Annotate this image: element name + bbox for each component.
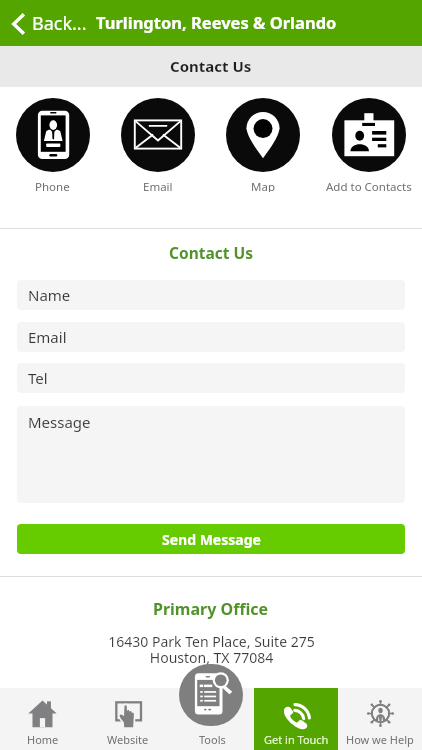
staticText: Add to Contacts	[326, 179, 412, 192]
button[interactable]: Add to Contacts	[316, 87, 422, 192]
staticText: Map	[251, 179, 275, 192]
staticText: Send Message	[162, 530, 261, 549]
staticText: Get in Touch	[264, 732, 329, 747]
button[interactable]: Email	[105, 87, 210, 192]
staticText: Home	[27, 732, 59, 747]
button[interactable]: Email	[17, 322, 405, 352]
button[interactable]: Back	[11, 11, 87, 36]
button[interactable]: Map	[210, 87, 316, 192]
staticText: Primary Office	[153, 598, 269, 620]
button[interactable]: Get in Touch	[254, 688, 338, 750]
other: Back	[11, 13, 26, 35]
button[interactable]: Name	[17, 280, 405, 310]
staticText: Phone	[35, 179, 70, 192]
button[interactable]: Phone	[0, 87, 105, 192]
button[interactable]: Tools	[170, 688, 254, 750]
button[interactable]: Home	[0, 688, 85, 750]
staticText: Email	[143, 179, 173, 192]
button[interactable]: Message	[17, 406, 405, 503]
staticText: Tools	[199, 732, 226, 747]
staticText: Contact Us	[170, 56, 252, 76]
button[interactable]: Tools	[179, 664, 243, 726]
staticText: Contact Us	[17, 242, 405, 263]
staticText: 16430 Park Ten Place, Suite 275 Houston,…	[108, 632, 315, 667]
staticText: Tel	[28, 368, 48, 388]
staticText: Message	[28, 412, 91, 432]
button[interactable]: Tel	[17, 363, 405, 393]
staticText: Turlington, Reeves & Orlando	[96, 11, 337, 33]
button[interactable]: Website	[85, 688, 170, 750]
staticText: Website	[107, 732, 149, 747]
button[interactable]: How we Help	[338, 688, 422, 750]
staticText: Name	[28, 285, 71, 305]
staticText: Back...	[32, 11, 87, 36]
staticText: Email	[28, 327, 67, 347]
staticText: How we Help	[346, 732, 414, 747]
button[interactable]: Send Message	[17, 524, 405, 554]
